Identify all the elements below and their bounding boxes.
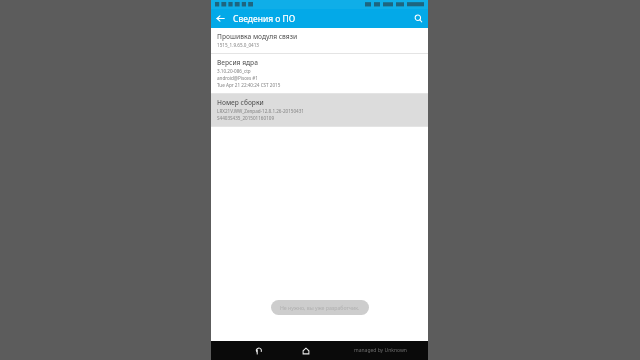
staticText: Не нужно, вы уже разработчик. — [280, 304, 360, 311]
button[interactable]: Back — [251, 343, 267, 359]
button[interactable]: Back — [211, 9, 230, 28]
staticText: S4403S435_201501160109 — [217, 115, 275, 121]
button[interactable]: Search — [409, 9, 428, 28]
staticText: managed by Unknown — [354, 347, 407, 354]
button[interactable]: Версия ядра — [211, 54, 428, 93]
staticText: Tue Apr 21 22:40:24 CST 2015 — [217, 82, 281, 88]
staticText: Сведения о ПО — [233, 13, 409, 25]
staticText: Номер сборки — [217, 98, 264, 107]
staticText: 3.10.20-086_ctp — [217, 68, 251, 74]
button[interactable]: Home — [298, 343, 314, 359]
staticText: Прошивка модуля связи — [217, 32, 298, 41]
staticText: android@Pisces #1 — [217, 75, 258, 81]
staticText: LRX21V.WW_Zenpad-12.8.1.26-20150431 — [217, 108, 305, 114]
staticText: 1515_1.9.65.0_0413 — [217, 42, 259, 48]
button[interactable]: Прошивка модуля связи — [211, 28, 428, 53]
staticText: Версия ядра — [217, 58, 258, 67]
button[interactable]: Не нужно, вы уже разработчик. — [271, 300, 369, 315]
button[interactable]: Номер сборки — [211, 94, 428, 126]
